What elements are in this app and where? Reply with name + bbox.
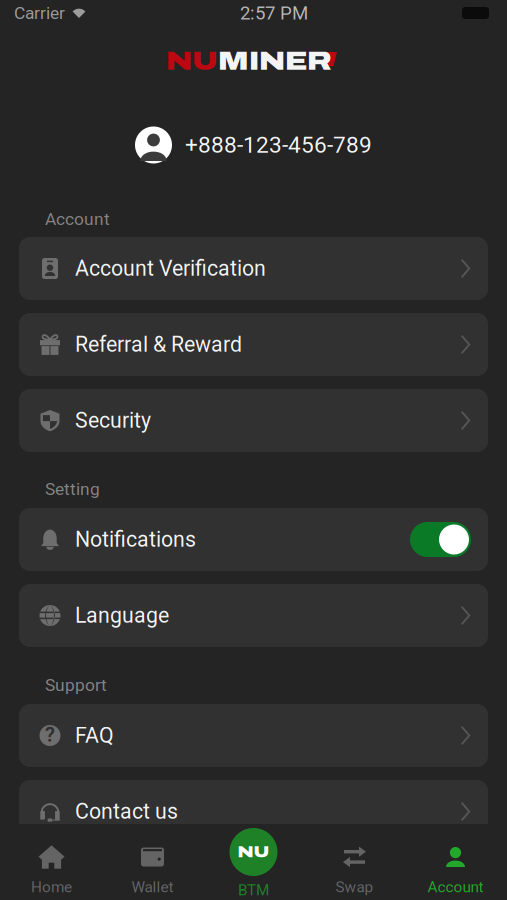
button[interactable]: Contact us bbox=[19, 780, 488, 843]
staticText: ? bbox=[45, 723, 55, 747]
button[interactable]: Language bbox=[19, 584, 488, 647]
button[interactable]: Account Verification bbox=[19, 237, 488, 300]
staticText: MINER bbox=[218, 47, 332, 75]
staticText: FAQ bbox=[75, 723, 114, 748]
staticText: Support bbox=[45, 675, 107, 695]
staticText: NU bbox=[237, 843, 269, 861]
staticText: Swap bbox=[335, 878, 373, 896]
staticText: Setting bbox=[45, 479, 100, 499]
staticText: 2:57 PM bbox=[240, 2, 308, 24]
staticText: +888-123-456-789 bbox=[185, 132, 372, 158]
staticText: Account bbox=[45, 209, 110, 229]
staticText: Account bbox=[427, 878, 483, 896]
staticText: Account Verification bbox=[75, 256, 266, 281]
button[interactable]: BTM bbox=[203, 828, 304, 900]
staticText: Referral & Reward bbox=[75, 332, 242, 357]
button[interactable]: Swap bbox=[304, 824, 405, 888]
staticText: Notifications bbox=[75, 527, 196, 552]
staticText: NU bbox=[166, 47, 218, 75]
button[interactable]: Notifications bbox=[19, 508, 488, 571]
staticText: Security bbox=[75, 408, 151, 433]
staticText: Wallet bbox=[131, 878, 173, 896]
button[interactable]: ? bbox=[19, 704, 488, 767]
button[interactable]: Home bbox=[1, 824, 102, 888]
staticText: Carrier bbox=[14, 3, 65, 23]
button[interactable]: Wallet bbox=[102, 824, 203, 888]
staticText: Home bbox=[31, 878, 72, 896]
staticText: Contact us bbox=[75, 799, 178, 824]
button[interactable]: Account bbox=[405, 824, 506, 888]
staticText: Language bbox=[75, 603, 169, 628]
staticText: BTM bbox=[238, 881, 269, 899]
button[interactable]: Referral & Reward bbox=[19, 313, 488, 376]
button[interactable]: Security bbox=[19, 389, 488, 452]
